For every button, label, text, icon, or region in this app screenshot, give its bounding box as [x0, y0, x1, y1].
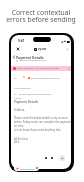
staticText: alena.oliver@exmple.com: [19, 59, 47, 62]
staticText: Cc: [14, 92, 17, 95]
button[interactable]: Back: [12, 55, 15, 58]
staticText: John: [14, 140, 20, 144]
staticText: Add a recipient: [14, 86, 31, 89]
button[interactable]: Review email: [14, 165, 39, 171]
staticText: alena.oliver@exmple.com: [31, 76, 60, 79]
staticText: accounts@zyvar-finance.com: [19, 92, 52, 95]
staticText: Let me know if you need anything else.: [14, 128, 62, 132]
button[interactable]: Check recipient - this doesn't look righ…: [11, 66, 71, 71]
staticText: Hi Alena,: [14, 108, 25, 112]
button[interactable]: Close: [16, 47, 19, 50]
button[interactable]: More options: [50, 156, 53, 159]
staticText: Review email: [20, 167, 35, 170]
staticText: Payment Details: [14, 100, 39, 104]
button[interactable]: Attach file: [44, 156, 47, 159]
staticText: 9:41: [18, 39, 25, 43]
staticText: Please send the below details to my acco…: [14, 116, 71, 128]
staticText: All the best,: [14, 137, 29, 141]
staticText: To: [14, 76, 17, 79]
staticText: zyvar: [38, 47, 47, 51]
button[interactable]: Send: [59, 155, 65, 161]
staticText: Correct contextual errors before sending: [0, 8, 83, 24]
staticText: Payment Details: [16, 55, 44, 60]
button[interactable]: Profile: [66, 48, 69, 51]
staticText: Check recipient - this doesn't look righ…: [17, 67, 59, 70]
staticText: Subject: [14, 97, 22, 100]
